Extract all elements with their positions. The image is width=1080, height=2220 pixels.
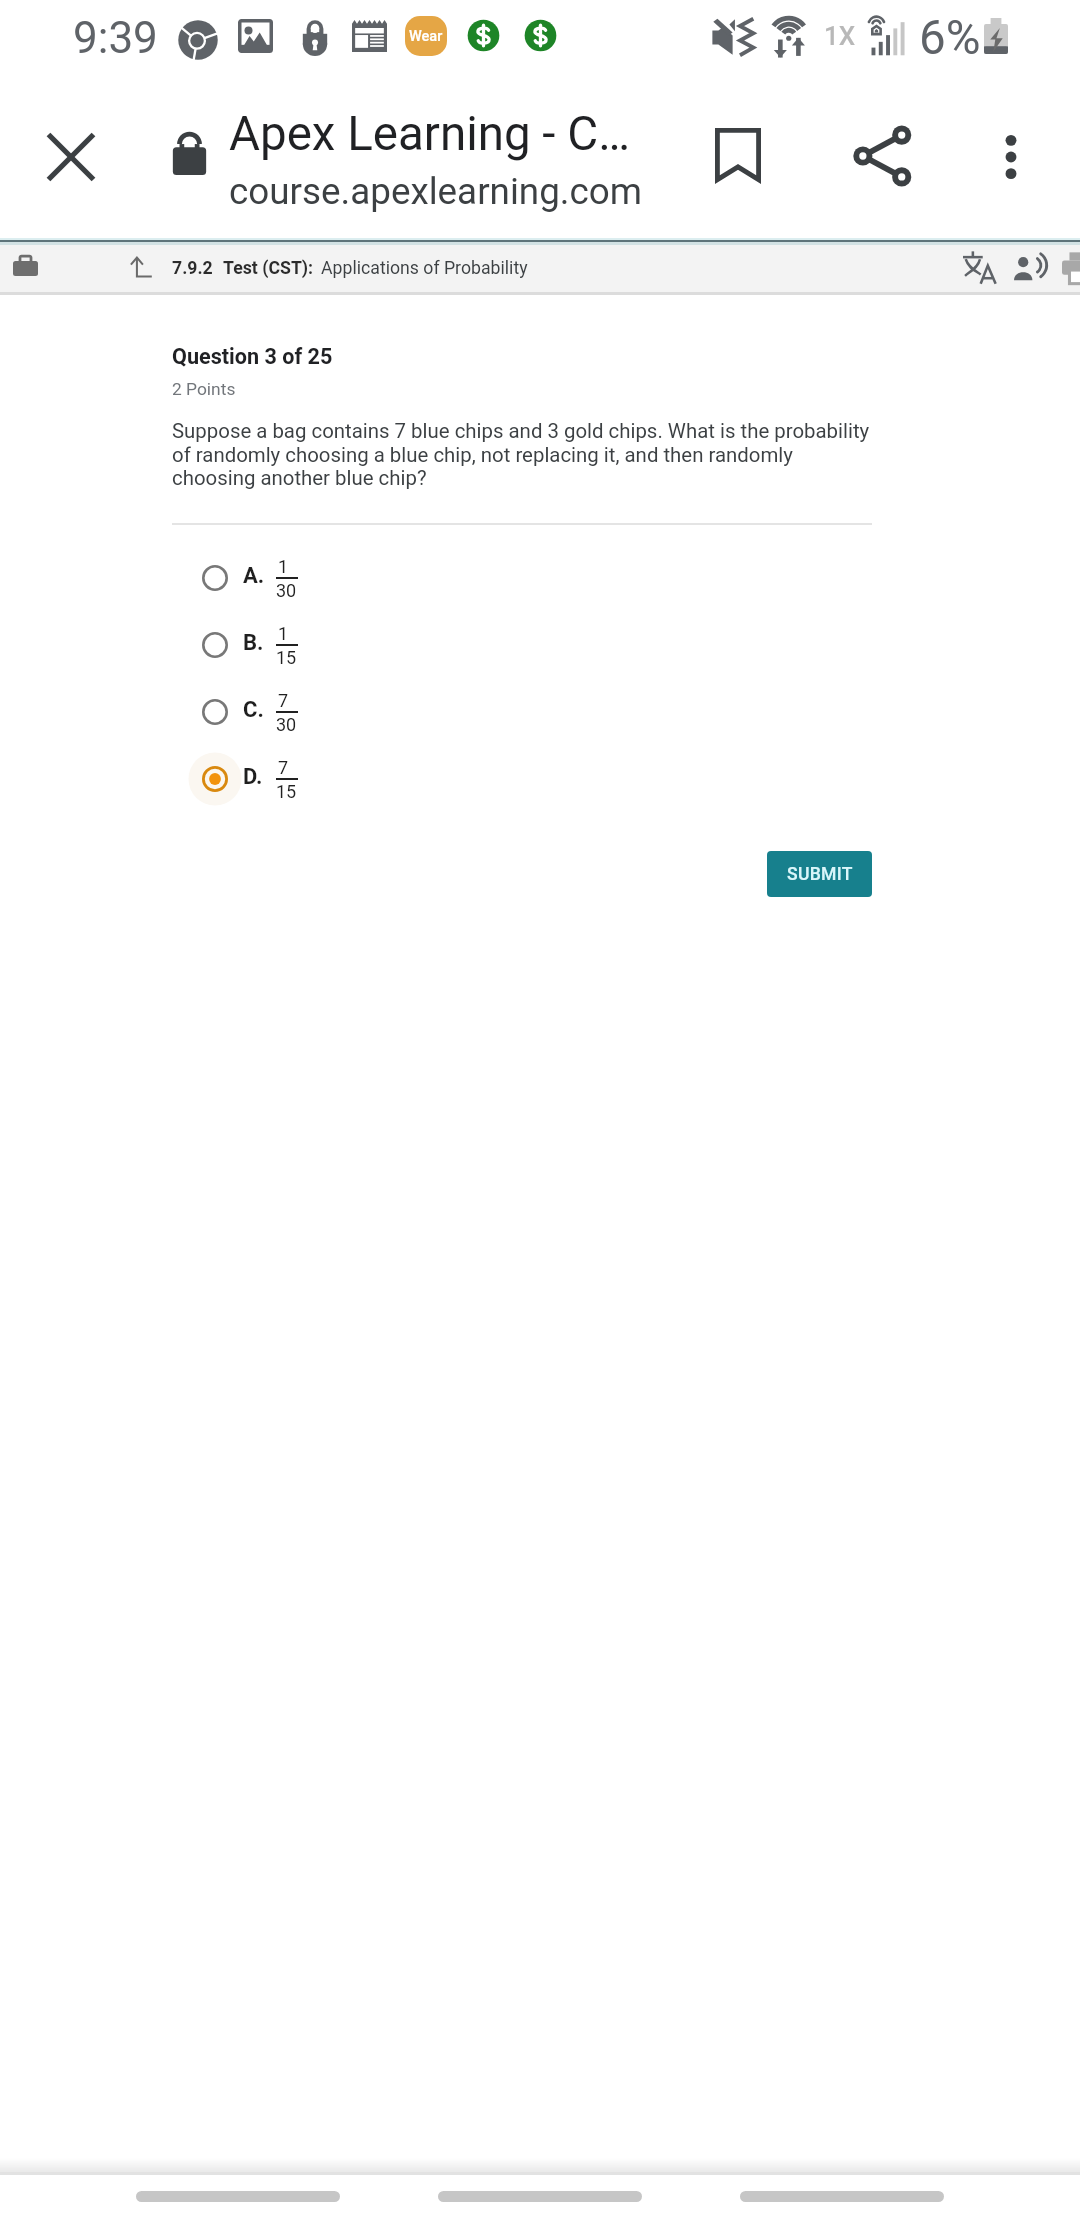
staticText: D. (243, 764, 263, 790)
button[interactable]: Close (22, 108, 120, 206)
button[interactable]: Translate (953, 242, 1005, 294)
staticText: course.apexlearning.com (229, 170, 643, 213)
staticText: B. (243, 630, 264, 656)
staticText: Question 3 of 25 (172, 344, 333, 369)
staticText: Suppose a bag contains 7 blue chips and … (172, 419, 878, 490)
staticText: 7.9.2 (172, 258, 213, 279)
staticText: Test (CST): (223, 258, 314, 279)
staticText: 2 Points (172, 379, 236, 399)
staticText: 7 (278, 757, 289, 778)
button[interactable]: Home (438, 2191, 642, 2202)
button[interactable]: Courses (0, 242, 52, 294)
staticText: 1X (824, 21, 856, 51)
button[interactable] (178, 682, 358, 742)
button[interactable]: Bookmark (689, 106, 787, 204)
button[interactable]: Read aloud (1003, 242, 1055, 294)
staticText: A. (243, 563, 265, 589)
button[interactable]: Recent apps (740, 2191, 944, 2202)
staticText: 1 (278, 556, 289, 577)
staticText: 1 (278, 623, 289, 644)
button[interactable]: Print (1052, 242, 1080, 294)
button[interactable] (178, 615, 358, 675)
button[interactable] (178, 548, 358, 608)
staticText: SUBMIT (787, 864, 853, 885)
staticText: Applications of Probability (321, 258, 528, 279)
button[interactable]: SUBMIT (767, 851, 872, 897)
button[interactable]: Share (833, 107, 931, 205)
staticText: 6% (919, 10, 981, 66)
button[interactable] (178, 749, 358, 809)
staticText: Wear (409, 28, 443, 45)
button[interactable]: More options (962, 108, 1060, 206)
staticText: 7 (278, 690, 289, 711)
staticText: 30 (276, 580, 297, 601)
staticText: C. (243, 697, 264, 723)
button[interactable]: Back to course (114, 242, 166, 294)
staticText: Apex Learning - C… (229, 106, 630, 162)
staticText: 15 (276, 781, 297, 802)
staticText: 9:39 (73, 12, 158, 64)
button[interactable]: Back (136, 2191, 340, 2202)
staticText: 15 (276, 647, 297, 668)
staticText: 30 (276, 714, 297, 735)
